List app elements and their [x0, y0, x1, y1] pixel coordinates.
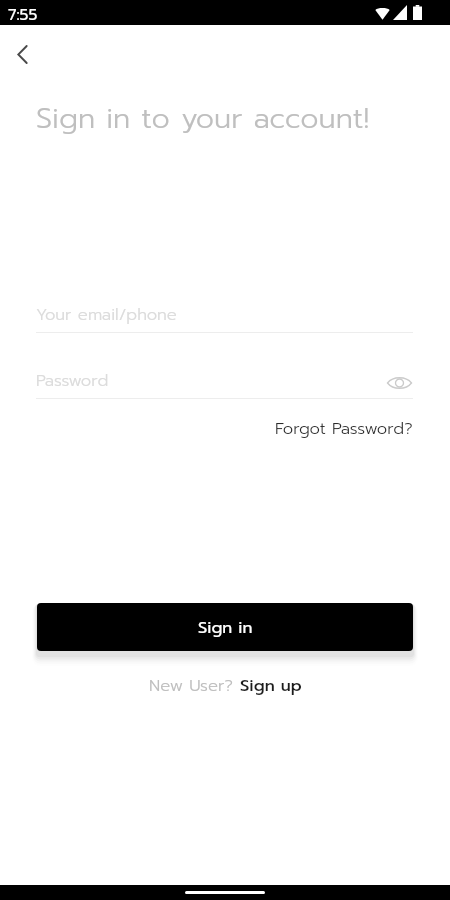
staticText: Sign in	[198, 615, 253, 640]
button[interactable]: Back	[2, 34, 42, 74]
staticText: New User?	[149, 673, 240, 698]
staticText: Sign in to your account!	[36, 96, 370, 140]
button[interactable]: Sign up	[240, 673, 302, 698]
button[interactable]: Show password	[385, 370, 413, 396]
staticText: Your email/phone	[36, 302, 177, 327]
staticText: Password	[36, 368, 109, 393]
staticText: 7:55	[8, 3, 38, 26]
button[interactable]: Sign in	[37, 603, 413, 651]
button[interactable]: Forgot Password?	[275, 414, 413, 443]
